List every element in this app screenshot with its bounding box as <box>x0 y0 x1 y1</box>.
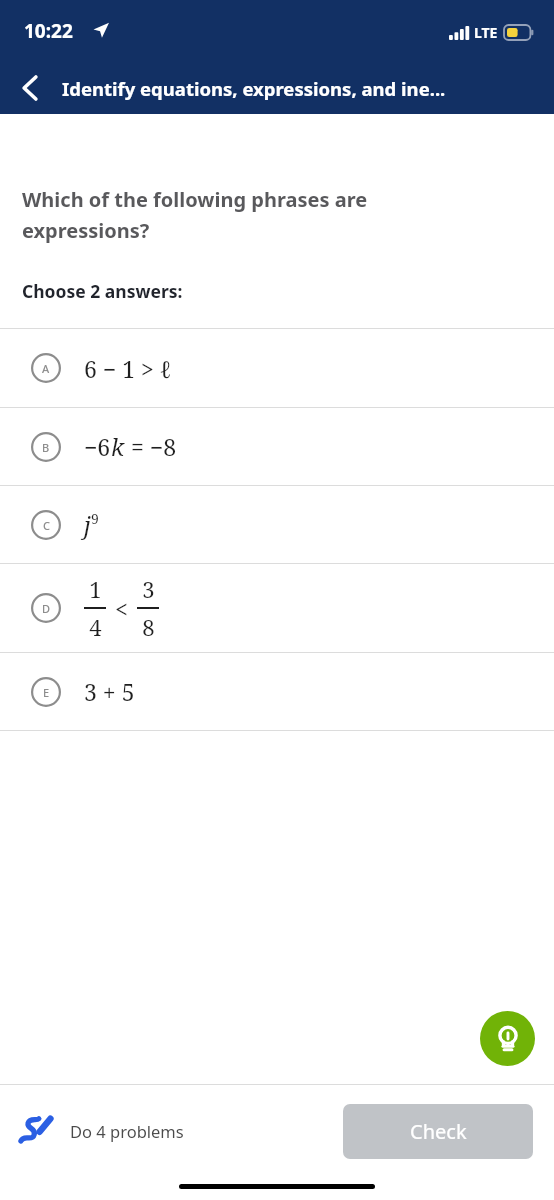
button[interactable]: Back <box>8 66 52 110</box>
button[interactable]: D <box>0 564 554 652</box>
staticText: 10:22 <box>24 18 73 44</box>
staticText: Do 4 problems <box>70 1120 184 1142</box>
staticText: k <box>111 431 125 462</box>
button[interactable]: Check <box>343 1104 533 1159</box>
staticText: Check <box>410 1118 467 1145</box>
button[interactable]: Hint <box>480 1011 535 1066</box>
staticText: −6 <box>84 431 111 462</box>
button[interactable]: B <box>0 408 554 485</box>
staticText: A <box>42 361 50 376</box>
button[interactable]: Do 4 problems <box>18 1113 184 1149</box>
staticText: LTE <box>474 23 498 42</box>
staticText: 1 <box>89 574 102 604</box>
staticText: 3 <box>142 574 155 604</box>
button[interactable]: A <box>0 329 554 407</box>
staticText: Which of the following phrases are expre… <box>22 186 368 243</box>
staticText: 8 <box>142 612 155 642</box>
staticText: 3 + 5 <box>84 676 135 707</box>
staticText: B <box>42 440 50 455</box>
staticText: E <box>43 685 50 700</box>
staticText: ℓ <box>160 353 172 384</box>
button[interactable]: C <box>0 486 554 563</box>
staticText: Identify equations, expressions, and ine… <box>62 76 446 101</box>
staticText: D <box>42 601 51 616</box>
staticText: 9 <box>91 509 99 528</box>
staticText: 4 <box>89 612 102 642</box>
staticText: Choose 2 answers: <box>22 279 183 303</box>
staticText: 6 − 1 > <box>84 353 160 384</box>
staticText: = −8 <box>125 431 176 462</box>
staticText: < <box>115 593 128 624</box>
staticText: j <box>84 509 91 540</box>
staticText: C <box>43 518 50 533</box>
button[interactable]: E <box>0 653 554 730</box>
